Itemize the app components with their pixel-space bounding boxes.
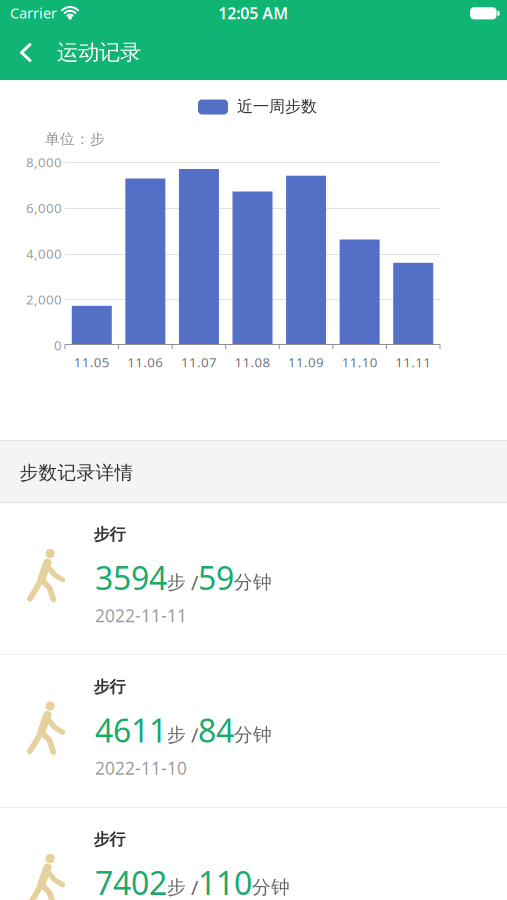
staticText: 3594 xyxy=(95,556,167,599)
staticText: 分钟 xyxy=(234,571,272,594)
staticText: 分钟 xyxy=(234,723,272,746)
staticText: 11.08 xyxy=(234,353,270,371)
staticText: 11.10 xyxy=(342,353,378,371)
staticText: Carrier xyxy=(10,3,57,22)
staticText: 110 xyxy=(198,861,252,900)
staticText: 84 xyxy=(198,709,234,751)
staticText: / xyxy=(186,874,198,900)
staticText: 11.05 xyxy=(74,353,110,371)
staticText: 11.09 xyxy=(288,353,324,371)
staticText: 6,000 xyxy=(26,199,62,217)
button[interactable] xyxy=(6,33,50,73)
staticText: 2,000 xyxy=(26,290,62,308)
staticText: 2022-11-11 xyxy=(95,604,187,627)
staticText: 步行 xyxy=(93,829,125,849)
staticText: 11.07 xyxy=(181,353,217,371)
staticText: 0 xyxy=(54,336,62,354)
staticText: 4611 xyxy=(95,709,167,751)
staticText: 步 xyxy=(167,571,186,594)
staticText: 59 xyxy=(198,556,234,599)
staticText: 步 xyxy=(167,723,186,746)
staticText: 运动记录 xyxy=(57,39,141,65)
staticText: 8,000 xyxy=(26,153,62,171)
staticText: 分钟 xyxy=(252,876,290,899)
staticText: / xyxy=(186,721,198,748)
staticText: 步 xyxy=(167,876,186,899)
staticText: / xyxy=(186,569,198,595)
button[interactable]: 步行 xyxy=(0,808,507,900)
staticText: 11.11 xyxy=(395,353,431,371)
staticText: 4,000 xyxy=(26,245,62,262)
staticText: 11.06 xyxy=(127,353,163,371)
staticText: 单位：步 xyxy=(45,130,105,148)
staticText: 12:05 AM xyxy=(218,2,288,24)
staticText: 步行 xyxy=(93,524,125,544)
button[interactable]: 步行 xyxy=(0,503,507,654)
staticText: 7402 xyxy=(95,861,167,900)
staticText: 步行 xyxy=(93,677,125,697)
staticText: 步数记录详情 xyxy=(19,461,133,484)
staticText: 近一周步数 xyxy=(237,97,317,116)
staticText: 2022-11-10 xyxy=(95,756,187,779)
button[interactable]: 步行 xyxy=(0,655,507,806)
